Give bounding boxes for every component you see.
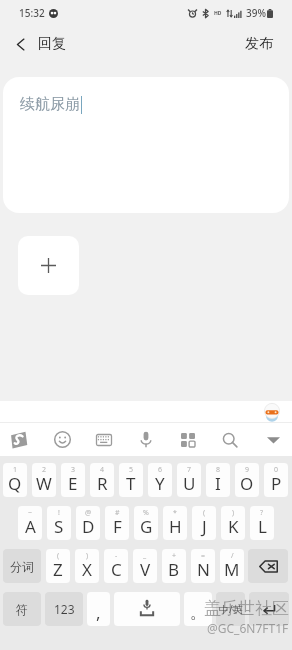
button[interactable]: ( [46, 549, 70, 583]
button[interactable]: = [191, 549, 215, 583]
button[interactable]: 8 [206, 463, 230, 497]
button[interactable]: Enter [249, 592, 289, 626]
button[interactable]: 1 [3, 463, 27, 497]
staticText: 符 [16, 602, 28, 617]
staticText: Q [8, 472, 22, 495]
button[interactable]: 2 [32, 463, 56, 497]
staticText: ( [57, 551, 60, 561]
staticText: 3 [71, 465, 76, 475]
button[interactable]: 4 [90, 463, 114, 497]
staticText: W [36, 472, 52, 495]
staticText: L [258, 515, 267, 538]
button[interactable]: Space / Voice input [114, 592, 180, 626]
staticText: I [215, 472, 221, 495]
button[interactable]: ( [192, 506, 216, 540]
staticText: S [54, 515, 64, 538]
button[interactable]: Input method assistant [263, 403, 281, 421]
staticText: T [126, 472, 136, 495]
staticText: ( [203, 508, 206, 518]
staticText: P [271, 472, 282, 495]
staticText: 发布 [245, 35, 273, 53]
staticText: _ [143, 551, 147, 561]
staticText: Z [53, 558, 63, 581]
button[interactable]: Emoji [45, 423, 79, 456]
staticText: ! [58, 508, 60, 518]
staticText: 续航尿崩 [20, 95, 80, 114]
staticText: R [97, 472, 108, 495]
button[interactable]: ) [75, 549, 99, 583]
button[interactable]: Keyboard layout [87, 423, 121, 456]
staticText: , [96, 601, 101, 624]
button[interactable]: - [104, 549, 128, 583]
button[interactable]: 发布 [229, 30, 292, 58]
staticText: B [168, 558, 180, 581]
staticText: 分词 [10, 559, 34, 574]
staticText: 123 [54, 601, 75, 617]
staticText: ? [260, 508, 264, 518]
button[interactable]: Add image [18, 236, 79, 295]
button[interactable]: Search [213, 423, 247, 456]
staticText: M [224, 558, 240, 581]
staticText: N [197, 558, 210, 581]
button[interactable]: 3 [61, 463, 85, 497]
staticText: % [143, 508, 149, 518]
button[interactable]: ! [47, 506, 71, 540]
staticText: 回复 [38, 35, 66, 53]
staticText: 。 [190, 602, 207, 623]
button[interactable]: 6 [148, 463, 172, 497]
other: Back [16, 37, 25, 52]
button[interactable]: / [220, 549, 244, 583]
staticText: 6 [158, 465, 163, 475]
button[interactable]: More apps [171, 423, 205, 456]
button[interactable]: ~ [18, 506, 42, 540]
staticText: U [183, 472, 196, 495]
staticText: 4 [100, 465, 105, 475]
button[interactable]: 中/英 [216, 592, 245, 626]
button[interactable]: ? [250, 506, 274, 540]
button[interactable]: 分词 [3, 549, 41, 583]
staticText: 1 [13, 465, 18, 475]
staticText: ) [86, 551, 89, 561]
button[interactable]: Sogou input method [2, 423, 36, 456]
staticText: HD [214, 10, 222, 17]
button[interactable]: 123 [45, 592, 83, 626]
staticText: 15:32 [19, 6, 45, 20]
staticText: ) [232, 508, 235, 518]
staticText: 2 [42, 465, 47, 475]
button[interactable]: Back [0, 30, 78, 58]
button[interactable]: _ [133, 549, 157, 583]
staticText: 中/英 [219, 602, 243, 616]
staticText: E [68, 472, 78, 495]
staticText: @ [85, 508, 92, 518]
staticText: # [115, 508, 120, 518]
button[interactable]: + [162, 549, 186, 583]
button[interactable]: Backspace [248, 549, 288, 583]
button[interactable]: # [105, 506, 129, 540]
button[interactable]: Hide keyboard [256, 423, 290, 456]
staticText: A [25, 515, 36, 538]
button[interactable]: * [163, 506, 187, 540]
staticText: + [172, 551, 177, 561]
staticText: D [82, 515, 95, 538]
staticText: O [240, 472, 254, 495]
staticText: 0 [274, 465, 279, 475]
button[interactable]: ) [221, 506, 245, 540]
button[interactable]: 0 [264, 463, 288, 497]
staticText: ~ [28, 508, 33, 518]
staticText: G [140, 515, 153, 538]
button[interactable]: 。 [184, 592, 212, 626]
staticText: J [202, 515, 207, 538]
staticText: 39% [246, 6, 266, 20]
button[interactable]: 续航尿崩 [3, 77, 289, 213]
staticText: 盖乐世社区 [204, 598, 289, 619]
button[interactable]: % [134, 506, 158, 540]
button[interactable]: 9 [235, 463, 259, 497]
button[interactable]: 5 [119, 463, 143, 497]
button[interactable]: 符 [3, 592, 41, 626]
button[interactable]: @ [76, 506, 100, 540]
button[interactable]: 7 [177, 463, 201, 497]
button[interactable]: Voice input [129, 423, 163, 456]
staticText: X [82, 558, 92, 581]
staticText: 5 [129, 465, 134, 475]
button[interactable]: , [87, 592, 110, 626]
